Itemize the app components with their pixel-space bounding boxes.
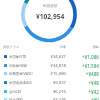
staticText: 金(GLD) (9, 89, 46, 94)
staticText: 評価 (46, 45, 66, 49)
staticText: 新興国株(VWO) (9, 71, 46, 76)
staticText: ¥34,627 (46, 54, 66, 60)
staticText: +¥1,584 (79, 63, 99, 69)
staticText: +¥1,086 (79, 54, 99, 60)
staticText: ¥15,080 (46, 71, 66, 77)
button[interactable]: 現金(JPY) (0, 95, 100, 100)
staticText: +¥488 (79, 71, 99, 77)
staticText: ¥102,954 (36, 12, 65, 21)
staticText: +¥42 (79, 89, 99, 95)
staticText: 日欧株(VEA) (9, 63, 46, 68)
staticText: 総資産額 (43, 4, 58, 9)
staticText: +¥0 (79, 97, 99, 100)
staticText: +¥48 (79, 80, 99, 86)
staticText: 米国債券(AGG) (9, 80, 46, 85)
staticText: ¥34,818 (46, 63, 66, 69)
button[interactable]: 日欧株(VEA) (0, 61, 100, 70)
staticText: 資産クラス (3, 45, 46, 49)
staticText: 米国株(VTI) (9, 54, 46, 59)
staticText: 現金(JPY) (9, 97, 46, 100)
staticText: 損益 (79, 45, 99, 49)
button[interactable]: 新興国株(VWO) (0, 69, 100, 78)
button[interactable]: 米国債券(AGG) (0, 78, 100, 87)
staticText: ¥3,176 (46, 97, 66, 100)
button[interactable]: 金(GLD) (0, 87, 100, 96)
staticText: ¥6,216 (46, 89, 66, 95)
staticText: ¥9,037 (46, 80, 66, 86)
button[interactable]: 米国株(VTI) (0, 52, 100, 61)
